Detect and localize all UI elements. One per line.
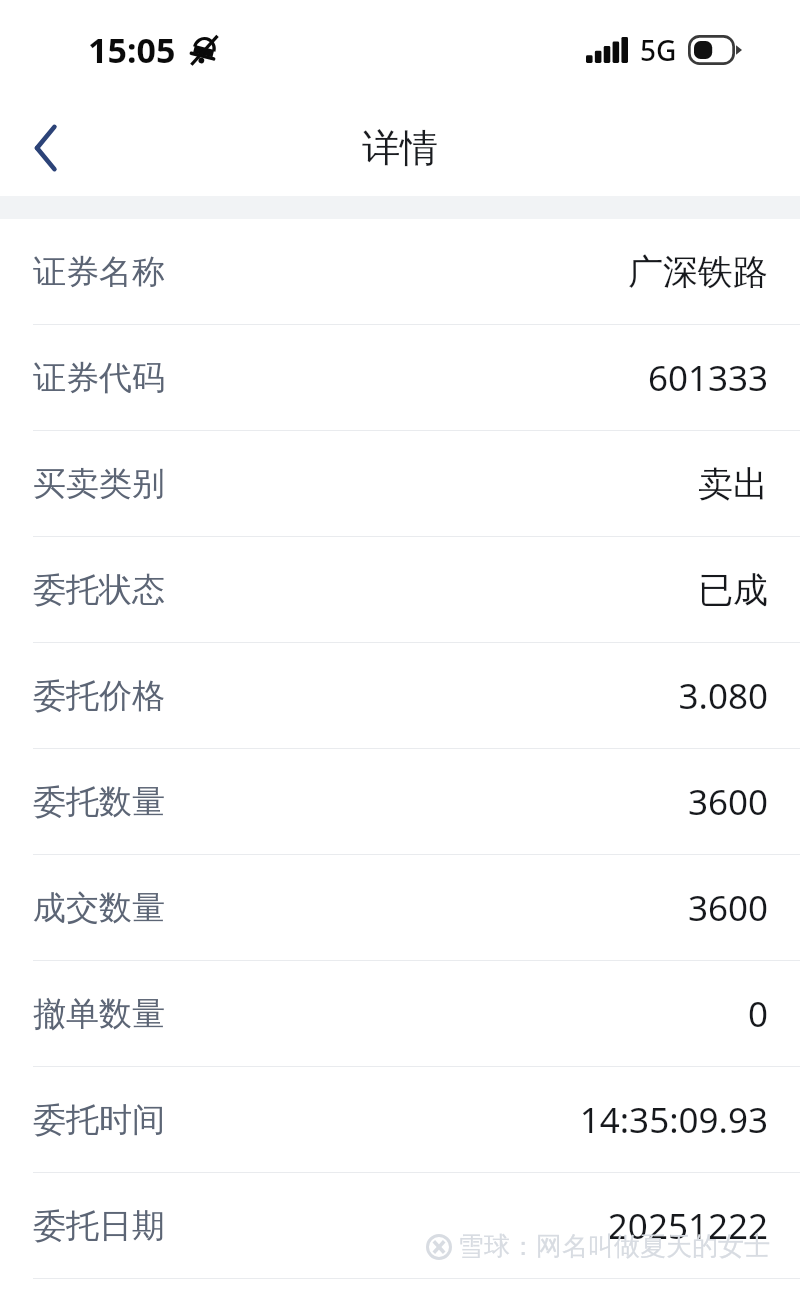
staticText: 14:35:09.93	[579, 1096, 768, 1144]
staticText: 已成	[698, 568, 768, 612]
staticText: 广深铁路	[628, 250, 768, 294]
staticText: 撤单数量	[33, 993, 165, 1035]
staticText: 601333	[647, 354, 768, 402]
staticText: 委托日期	[33, 1205, 165, 1247]
staticText: 证券名称	[33, 251, 165, 293]
button[interactable]: 买卖类别	[0, 431, 800, 537]
staticText: 3600	[687, 884, 768, 932]
button[interactable]: 证券名称	[0, 219, 800, 325]
staticText: 3.080	[678, 672, 768, 720]
staticText: 委托状态	[33, 569, 165, 611]
staticText: 0	[747, 990, 768, 1038]
staticText: 15:05	[88, 27, 176, 73]
staticText: 委托数量	[33, 781, 165, 823]
staticText: 委托价格	[33, 675, 165, 717]
staticText: 委托时间	[33, 1099, 165, 1141]
button[interactable]: 委托状态	[0, 537, 800, 643]
staticText: 雪球：网名叫做夏天的女士	[458, 1230, 770, 1263]
button[interactable]: 委托日期	[0, 1173, 800, 1279]
button[interactable]: 撤单数量	[0, 961, 800, 1067]
staticText: 卖出	[698, 462, 768, 506]
staticText: 详情	[362, 124, 438, 172]
staticText: 成交数量	[33, 887, 165, 929]
button[interactable]: 委托时间	[0, 1067, 800, 1173]
staticText: 20251222	[607, 1202, 768, 1250]
button[interactable]: Back	[10, 112, 82, 184]
staticText: 买卖类别	[33, 463, 165, 505]
button[interactable]: 证券代码	[0, 325, 800, 431]
button[interactable]: 成交数量	[0, 855, 800, 961]
button[interactable]: 委托数量	[0, 749, 800, 855]
staticText: 5G	[640, 31, 677, 69]
staticText: 证券代码	[33, 357, 165, 399]
staticText: 3600	[687, 778, 768, 826]
button[interactable]: 委托价格	[0, 643, 800, 749]
